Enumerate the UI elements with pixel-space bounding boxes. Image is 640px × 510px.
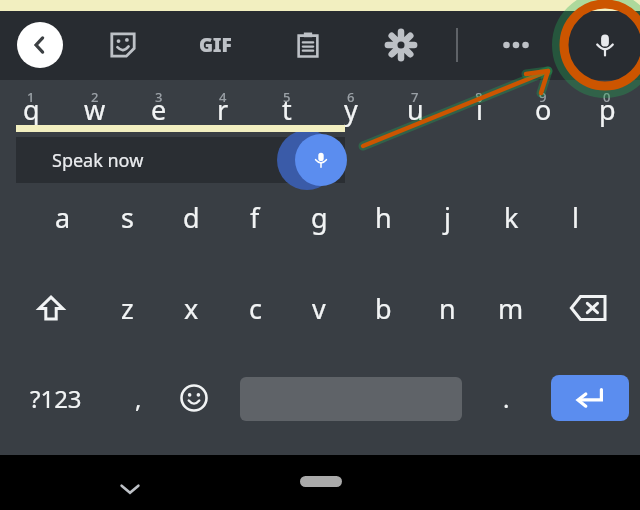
staticText: j [444,199,451,236]
button[interactable]: g [287,187,351,247]
staticText: o [535,91,552,128]
button[interactable]: e [127,84,191,134]
button[interactable]: More options [494,23,538,67]
button[interactable]: Emoji [166,370,222,426]
button[interactable]: Clipboard [286,23,330,67]
button[interactable]: t [255,84,319,134]
staticText: l [572,199,579,236]
staticText: x [184,290,199,327]
staticText: p [599,91,616,128]
button[interactable]: z [95,278,159,338]
staticText: 0 [603,88,611,106]
staticText: v [312,290,326,327]
button[interactable]: b [351,278,415,338]
button[interactable]: m [479,278,543,338]
staticText: k [504,199,519,236]
button[interactable]: i [447,84,511,134]
staticText: Speak now [52,148,144,173]
staticText: 7 [411,88,419,106]
button[interactable]: GIF [189,23,241,67]
button[interactable]: r [191,84,255,134]
staticText: t [282,91,292,128]
button[interactable]: o [511,84,575,134]
staticText: 1 [27,88,35,106]
staticText: 8 [475,88,483,106]
staticText: 3 [155,88,163,106]
button[interactable]: f [223,187,287,247]
button[interactable]: h [351,187,415,247]
staticText: g [311,199,328,236]
button[interactable]: j [415,187,479,247]
staticText: GIF [199,32,232,58]
button[interactable]: Enter [551,375,629,421]
button[interactable]: w [63,84,127,134]
button[interactable]: Home [300,476,342,487]
button[interactable]: Back [17,22,63,68]
button[interactable]: s [95,187,159,247]
staticText: , [135,382,142,415]
staticText: 2 [91,88,99,106]
staticText: b [375,290,392,327]
staticText: h [375,199,392,236]
staticText: ?123 [30,382,82,415]
button[interactable]: c [223,278,287,338]
staticText: 9 [539,88,547,106]
button[interactable]: . [478,370,534,426]
staticText: z [121,290,134,327]
button[interactable]: q [0,84,63,134]
staticText: e [151,91,167,128]
staticText: 4 [219,88,227,106]
button[interactable]: p [575,84,639,134]
button[interactable]: ?123 [8,370,104,426]
button[interactable]: a [31,187,95,247]
button[interactable]: x [159,278,223,338]
staticText: d [183,199,200,236]
staticText: r [217,91,229,128]
staticText: q [23,91,40,128]
button[interactable]: Settings [379,23,423,67]
staticText: 6 [347,88,355,106]
staticText: i [476,91,483,128]
button[interactable]: Backspace [557,278,619,338]
staticText: 5 [283,88,291,106]
staticText: s [121,199,134,236]
button[interactable]: n [415,278,479,338]
button[interactable]: Voice input [583,23,627,67]
button[interactable]: v [287,278,351,338]
button[interactable]: k [479,187,543,247]
button[interactable]: u [383,84,447,134]
staticText: a [55,199,71,236]
staticText: u [407,91,424,128]
staticText: m [498,290,524,327]
staticText: n [439,290,456,327]
staticText: y [344,91,358,128]
button[interactable]: Hide keyboard [108,467,152,510]
button[interactable]: Stickers [101,23,145,67]
staticText: w [84,91,106,128]
button[interactable]: Speak now [16,137,345,183]
button[interactable]: d [159,187,223,247]
button[interactable]: , [108,370,168,426]
staticText: f [250,199,260,236]
button[interactable]: y [319,84,383,134]
staticText: c [249,290,262,327]
staticText: . [503,382,510,415]
button[interactable]: Shift [20,278,82,338]
button[interactable]: l [543,187,607,247]
